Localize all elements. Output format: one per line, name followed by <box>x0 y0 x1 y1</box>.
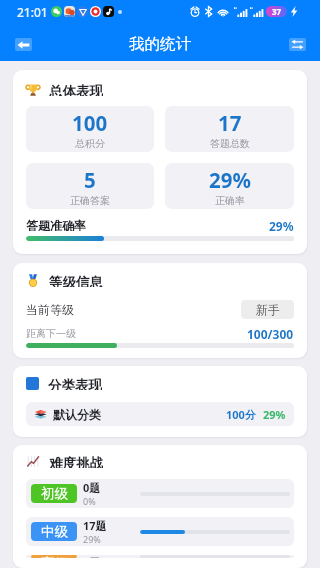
staticText: 中级 <box>41 523 68 540</box>
staticText: 29% <box>269 218 294 231</box>
staticText: 高级 <box>41 555 68 558</box>
staticText: 100分 <box>226 407 256 422</box>
staticText: 答题总数 <box>210 137 250 150</box>
staticText: 等级信息 <box>49 274 103 287</box>
staticText: 100 <box>72 109 108 137</box>
staticText: 当前等级 <box>26 302 74 317</box>
button[interactable]: 中级 <box>26 517 294 546</box>
staticText: 正确答案 <box>70 194 110 207</box>
button[interactable]: 默认分类 <box>26 402 294 426</box>
staticText: 17题 <box>83 518 107 533</box>
staticText: 29% <box>263 407 286 422</box>
staticText: 0题 <box>83 480 101 495</box>
staticText: 距离下一级 <box>26 327 76 340</box>
button[interactable]: Refresh <box>281 30 313 58</box>
staticText: 我的统计 <box>129 34 191 54</box>
staticText: 17 <box>218 109 242 137</box>
staticText: 难度挑战 <box>49 455 103 468</box>
staticText: 默认分类 <box>53 407 101 422</box>
staticText: 29% <box>83 533 101 545</box>
staticText: 21:01 <box>17 4 48 20</box>
staticText: 29% <box>209 166 251 194</box>
button[interactable]: 初级 <box>26 479 294 508</box>
staticText: 0题 <box>83 555 101 558</box>
staticText: 总积分 <box>75 137 105 150</box>
button[interactable]: Back <box>7 30 39 58</box>
button[interactable]: 新手 <box>241 300 294 319</box>
staticText: 0% <box>83 495 96 507</box>
staticText: 分类表现 <box>48 377 102 390</box>
staticText: 总体表现 <box>49 83 103 96</box>
staticText: 正确率 <box>215 194 245 207</box>
staticText: 100/300 <box>247 326 294 340</box>
staticText: 初级 <box>41 485 68 502</box>
staticText: 新手 <box>256 302 280 317</box>
staticText: 答题准确率 <box>26 218 86 231</box>
staticText: 37 <box>272 6 282 17</box>
staticText: 5 <box>84 166 96 194</box>
button[interactable]: 高级 <box>26 555 294 558</box>
